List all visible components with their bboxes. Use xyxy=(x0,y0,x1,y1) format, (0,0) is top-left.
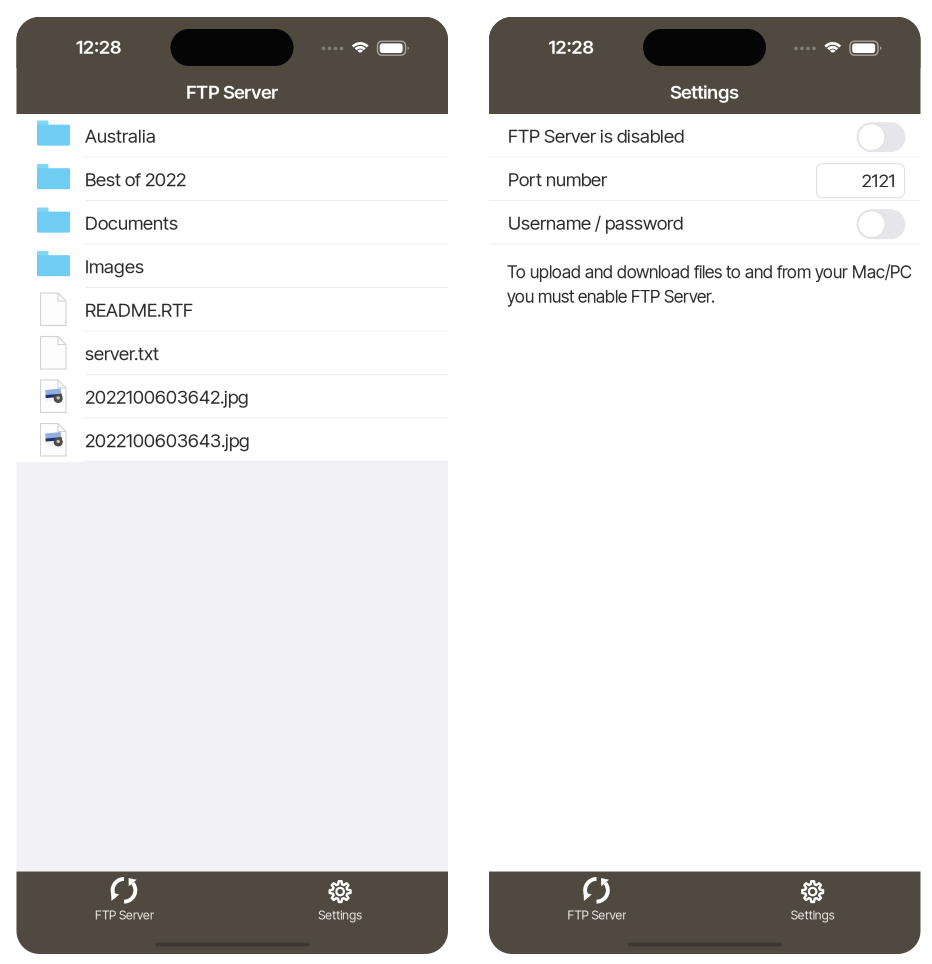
staticText: Settings xyxy=(670,81,739,103)
button[interactable]: 2022100603642.jpg xyxy=(16,375,448,418)
button[interactable]: Username / password xyxy=(489,201,920,244)
staticText: FTP Server xyxy=(186,81,278,103)
button[interactable]: FTP Server xyxy=(16,877,232,959)
button[interactable]: FTP Server xyxy=(489,877,705,959)
staticText: Settings xyxy=(318,908,362,922)
button[interactable]: 2022100603643.jpg xyxy=(16,418,448,462)
staticText: To upload and download files to and from… xyxy=(507,261,912,282)
staticText: 2121 xyxy=(861,169,895,192)
staticText: Username / password xyxy=(508,212,683,234)
staticText: Port number xyxy=(508,168,607,191)
button[interactable]: Australia xyxy=(16,114,448,157)
staticText: 2022100603643.jpg xyxy=(85,429,250,452)
button[interactable]: server.txt xyxy=(16,331,448,375)
staticText: FTP Server xyxy=(95,907,154,922)
staticText: Documents xyxy=(85,212,178,234)
button[interactable]: Settings xyxy=(705,879,921,961)
staticText: FTP Server is disabled xyxy=(508,125,684,147)
button[interactable]: README.RTF xyxy=(16,288,448,331)
button[interactable]: Port number xyxy=(489,157,920,201)
staticText: 12:28 xyxy=(76,36,121,58)
staticText: 12:28 xyxy=(548,36,593,58)
staticText: 2022100603642.jpg xyxy=(85,386,249,408)
staticText: README.RTF xyxy=(85,299,193,321)
staticText: you must enable FTP Server. xyxy=(507,286,715,307)
staticText: Images xyxy=(85,255,144,278)
staticText: Australia xyxy=(85,125,156,147)
button[interactable]: Images xyxy=(16,244,448,288)
staticText: server.txt xyxy=(85,342,159,365)
button[interactable]: Settings xyxy=(232,879,448,961)
staticText: Best of 2022 xyxy=(85,168,186,191)
button[interactable]: FTP Server is disabled xyxy=(489,114,920,157)
button[interactable]: Documents xyxy=(16,201,448,244)
button[interactable]: Best of 2022 xyxy=(16,157,448,201)
staticText: Settings xyxy=(791,908,835,922)
staticText: FTP Server xyxy=(567,907,626,922)
